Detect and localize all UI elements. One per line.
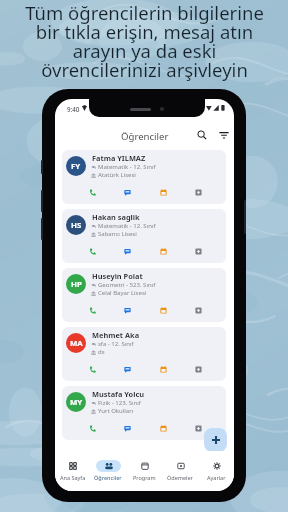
staticText: ds (98, 348, 105, 356)
staticText: MY (70, 397, 83, 408)
button[interactable]: Calendar (155, 242, 171, 260)
button[interactable]: Calendar (155, 360, 171, 378)
staticText: Ana Sayfa (60, 474, 86, 481)
button[interactable]: Calendar (155, 183, 171, 201)
button[interactable]: Archive (190, 301, 206, 319)
staticText: Program (133, 474, 156, 481)
staticText: Mustafa Yolcu (92, 389, 145, 399)
button[interactable]: Program (126, 460, 162, 481)
button[interactable]: Call (84, 419, 100, 437)
button[interactable]: MA (62, 327, 226, 381)
staticText: sfa - 12. Sınıf (98, 340, 134, 348)
button[interactable]: Message (119, 183, 135, 201)
button[interactable]: HP (62, 268, 226, 322)
staticText: Celal Bayar Lisesi (98, 289, 147, 297)
button[interactable]: Call (84, 183, 100, 201)
button[interactable]: Call (84, 301, 100, 319)
staticText: Ayarlar (207, 474, 226, 481)
staticText: HS (71, 220, 82, 231)
staticText: Matematik - 12. Sınıf (98, 222, 156, 230)
button[interactable]: Message (119, 301, 135, 319)
staticText: HP (71, 279, 82, 290)
button[interactable]: Archive (190, 419, 206, 437)
button[interactable]: Message (119, 360, 135, 378)
button[interactable]: MY (62, 386, 226, 440)
button[interactable]: Call (84, 242, 100, 260)
staticText: Ödemeler (167, 474, 193, 481)
button[interactable]: Archive (190, 242, 206, 260)
staticText: Matematik - 12. Sınıf (98, 163, 156, 171)
staticText: FY (71, 161, 81, 172)
staticText: Öğrenciler (94, 474, 122, 481)
staticText: Yurt Okulları (98, 407, 134, 415)
staticText: Sabancı Lisesi (98, 230, 137, 238)
button[interactable]: HS (62, 209, 226, 263)
button[interactable]: Message (119, 242, 135, 260)
button[interactable]: Call (84, 360, 100, 378)
staticText: Atatürk Lisesi (98, 171, 136, 179)
button[interactable]: Ana Sayfa (55, 460, 90, 481)
button[interactable]: Ayarlar (198, 460, 234, 481)
staticText: Fatma YILMAZ (92, 153, 146, 163)
button[interactable]: Add student (204, 428, 227, 452)
button[interactable]: Öğrenciler (90, 460, 126, 481)
staticText: Öğrenciler (121, 130, 169, 143)
button[interactable]: Search (194, 127, 210, 143)
button[interactable]: Archive (190, 183, 206, 201)
button[interactable]: Archive (190, 360, 206, 378)
button[interactable]: Filter (216, 127, 232, 143)
button[interactable]: Message (119, 419, 135, 437)
button[interactable]: Ödemeler (162, 460, 198, 481)
staticText: Fizik - 123. Sınıf (98, 399, 141, 407)
staticText: Tüm öğrencilerin bilgilerine bir tıkla e… (25, 0, 264, 82)
button[interactable]: Calendar (155, 419, 171, 437)
staticText: Hakan saglik (92, 212, 140, 222)
button[interactable]: FY (62, 150, 226, 204)
staticText: Huseyin Polat (92, 271, 143, 281)
staticText: MA (70, 338, 83, 349)
staticText: Mehmet Aka (92, 330, 140, 340)
staticText: Geometri - 523. Sınıf (98, 281, 156, 289)
button[interactable]: Calendar (155, 301, 171, 319)
staticText: 9:40 (67, 105, 80, 113)
